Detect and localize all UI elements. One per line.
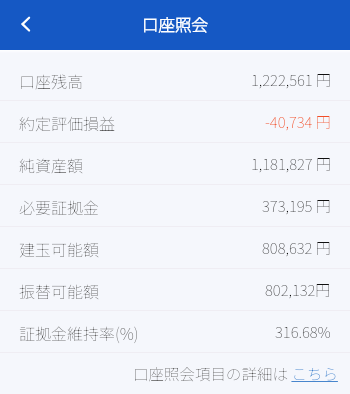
button[interactable]: 口座照会項目の詳細は こちら <box>133 362 350 384</box>
staticText: 必要証拠金 <box>19 195 100 218</box>
staticText: 証拠金維持率(%) <box>19 321 139 344</box>
staticText: 約定評価損益 <box>19 111 116 134</box>
button[interactable]: 口座残高 <box>0 59 350 101</box>
staticText: 口座照会 <box>142 12 208 36</box>
staticText: 1,181,827 円 <box>251 153 331 175</box>
staticText: 口座残高 <box>19 69 84 92</box>
button[interactable]: 必要証拠金 <box>0 185 350 227</box>
staticText: 808,632 円 <box>262 237 331 259</box>
button[interactable]: 建玉可能額 <box>0 227 350 269</box>
staticText: 802,132円 <box>265 279 331 301</box>
staticText: 建玉可能額 <box>19 237 100 260</box>
staticText: -40,734 円 <box>265 111 331 133</box>
staticText: 373,195 円 <box>262 195 331 217</box>
staticText: 純資産額 <box>19 153 84 176</box>
staticText: 振替可能額 <box>19 279 100 302</box>
button[interactable]: 証拠金維持率(%) <box>0 311 350 353</box>
button[interactable]: 約定評価損益 <box>0 101 350 143</box>
button[interactable]: 振替可能額 <box>0 269 350 311</box>
button[interactable]: Back <box>9 7 43 41</box>
staticText: 1,222,561 円 <box>251 69 331 91</box>
button[interactable]: 純資産額 <box>0 143 350 185</box>
staticText: 316.68% <box>275 321 331 343</box>
